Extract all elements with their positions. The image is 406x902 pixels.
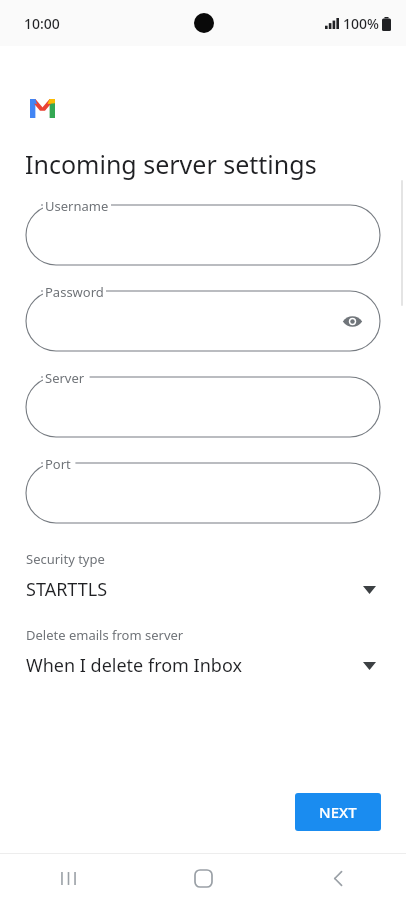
button[interactable]: Back	[271, 854, 406, 902]
staticText: NEXT	[319, 802, 357, 822]
button[interactable]: NEXT	[295, 793, 381, 831]
staticText: Port	[45, 455, 71, 473]
staticText: 100%	[343, 14, 379, 33]
button[interactable]: Password	[26, 291, 380, 351]
button[interactable]: Server	[26, 377, 380, 437]
staticText: Username	[45, 197, 109, 215]
staticText: Incoming server settings	[25, 147, 317, 181]
staticText: Server	[45, 369, 85, 387]
staticText: Password	[45, 283, 104, 301]
button[interactable]: Security type	[0, 550, 406, 602]
button[interactable]: Show password	[338, 307, 366, 335]
staticText: STARTTLS	[26, 577, 363, 602]
button[interactable]: Home	[136, 854, 271, 902]
button[interactable]: Recent apps	[0, 854, 136, 902]
staticText: When I delete from Inbox	[26, 653, 363, 678]
button[interactable]: Username	[26, 205, 380, 265]
button[interactable]: Port	[26, 463, 380, 523]
staticText: Delete emails from server	[26, 626, 184, 644]
button[interactable]: Delete emails from server	[0, 626, 406, 678]
staticText: 10:00	[24, 14, 60, 33]
staticText: Security type	[26, 550, 105, 568]
